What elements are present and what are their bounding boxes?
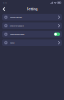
button[interactable]: Adaptive Reminder [2,31,62,37]
button[interactable]: Connection App [2,14,62,20]
button[interactable]: About [2,39,62,46]
button[interactable]: Check for update [2,22,62,29]
staticText: Check for update [10,24,24,27]
staticText: 9:41 [3,1,7,4]
staticText: Connection App [10,16,22,18]
button[interactable]: Back [1,6,6,12]
staticText: Adaptive Reminder [10,33,25,35]
staticText: Setting [26,7,37,11]
staticText: About [10,41,15,44]
